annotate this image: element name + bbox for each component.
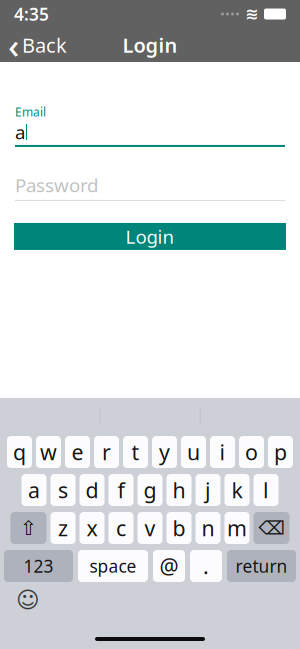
button[interactable]: i [210, 436, 235, 468]
staticText: ≋ [245, 5, 258, 23]
staticText: ☺ [16, 587, 40, 613]
staticText: q [13, 438, 26, 466]
button[interactable]: space [78, 550, 148, 582]
staticText: e [71, 438, 83, 466]
button[interactable]: j [195, 474, 220, 506]
staticText: o [245, 438, 258, 466]
staticText: Back [22, 32, 67, 58]
button[interactable]: c [108, 512, 133, 544]
button[interactable]: q [7, 436, 32, 468]
staticText: c [116, 514, 126, 542]
staticText: space [89, 554, 136, 577]
staticText: p [274, 438, 287, 466]
staticText: Password [15, 172, 98, 197]
button[interactable]: w [36, 436, 61, 468]
staticText: a [15, 119, 25, 144]
button[interactable]: r [94, 436, 119, 468]
staticText: ⇧ [20, 517, 37, 539]
staticText: z [58, 514, 68, 542]
button[interactable]: Emoji [14, 588, 42, 612]
button[interactable]: v [137, 512, 162, 544]
button[interactable]: e [65, 436, 90, 468]
staticText: d [85, 476, 98, 504]
button[interactable]: p [268, 436, 293, 468]
button[interactable]: z [50, 512, 75, 544]
staticText: Email [15, 104, 46, 120]
button[interactable]: t [123, 436, 148, 468]
staticText: u [187, 438, 200, 466]
button[interactable]: k [224, 474, 249, 506]
button[interactable]: a [21, 474, 46, 506]
button[interactable]: y [152, 436, 177, 468]
staticText: Login [125, 224, 174, 249]
staticText: 4:35 [14, 2, 49, 25]
button[interactable]: n [195, 512, 220, 544]
staticText: j [205, 476, 211, 504]
button[interactable]: g [137, 474, 162, 506]
button[interactable]: m [224, 512, 249, 544]
staticText: . [203, 552, 209, 580]
staticText: g [143, 476, 156, 504]
staticText: ⌫ [258, 517, 284, 539]
staticText: t [131, 438, 139, 466]
button[interactable]: @ [153, 550, 185, 582]
staticText: y [159, 438, 170, 466]
button[interactable]: f [108, 474, 133, 506]
button[interactable]: d [79, 474, 104, 506]
button[interactable]: ‹ [0, 28, 75, 62]
button[interactable]: . [190, 550, 222, 582]
button[interactable]: x [79, 512, 104, 544]
staticText: r [102, 438, 111, 466]
staticText: @ [159, 552, 178, 580]
staticText: a [28, 476, 40, 504]
staticText: f [117, 476, 124, 504]
staticText: n [201, 514, 214, 542]
staticText: i [219, 438, 225, 466]
button[interactable]: l [253, 474, 278, 506]
button[interactable]: s [50, 474, 75, 506]
button[interactable]: o [239, 436, 264, 468]
button[interactable]: Login [14, 223, 286, 250]
button[interactable]: 123 [4, 550, 73, 582]
staticText: h [172, 476, 185, 504]
button[interactable]: Shift [10, 512, 46, 544]
button[interactable]: h [166, 474, 191, 506]
staticText: m [227, 514, 247, 542]
button[interactable]: u [181, 436, 206, 468]
button[interactable]: Delete [253, 512, 289, 544]
button[interactable]: return [227, 550, 296, 582]
button[interactable]: b [166, 512, 191, 544]
staticText: s [58, 476, 68, 504]
staticText: x [86, 514, 97, 542]
staticText: l [263, 476, 269, 504]
staticText: Login [122, 32, 177, 58]
staticText: 123 [23, 554, 53, 577]
staticText: ‹ [8, 22, 19, 68]
staticText: k [231, 476, 242, 504]
staticText: return [235, 554, 287, 577]
staticText: w [40, 438, 57, 466]
staticText: b [172, 514, 185, 542]
staticText: v [144, 514, 155, 542]
